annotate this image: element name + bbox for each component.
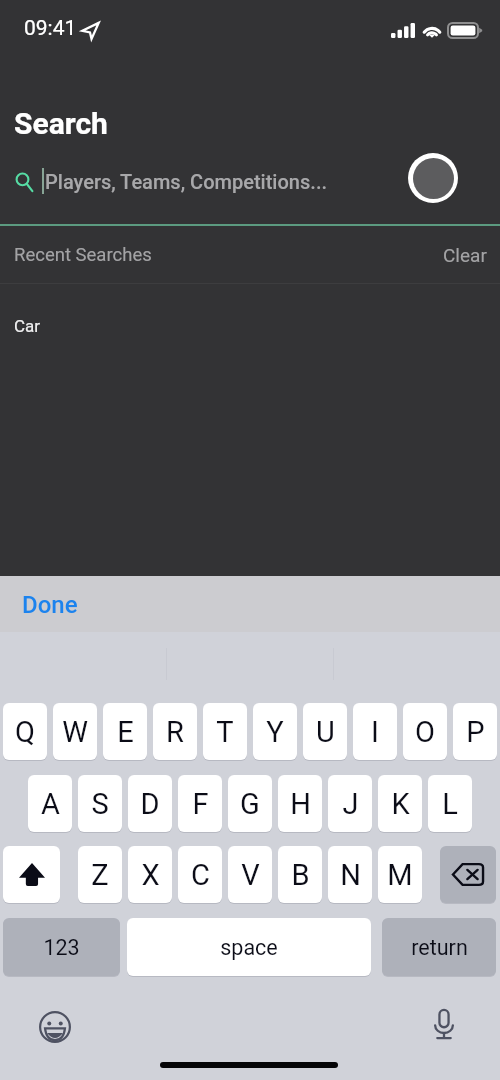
button[interactable]: G [228, 775, 272, 832]
button[interactable]: Profile [408, 153, 458, 203]
button[interactable]: Backspace [440, 846, 496, 903]
staticText: 09:41 [24, 16, 77, 41]
button[interactable]: Y [253, 703, 297, 760]
staticText: space [220, 935, 278, 960]
button[interactable]: H [278, 775, 322, 832]
staticText: G [240, 787, 260, 821]
staticText: V [241, 858, 260, 892]
staticText: Q [15, 715, 35, 749]
button[interactable]: D [128, 775, 172, 832]
button[interactable]: A [28, 775, 72, 832]
staticText: E [117, 715, 134, 749]
staticText: Search [14, 106, 108, 141]
staticText: F [192, 787, 209, 821]
staticText: O [415, 715, 435, 749]
staticText: 123 [43, 935, 80, 960]
button[interactable]: Z [78, 846, 122, 903]
staticText: H [290, 787, 311, 821]
button[interactable]: Q [3, 703, 47, 760]
staticText: X [141, 858, 160, 892]
button[interactable]: return [382, 918, 496, 976]
button[interactable]: W [53, 703, 97, 760]
staticText: R [166, 715, 184, 749]
staticText: A [41, 787, 60, 821]
button[interactable]: O [403, 703, 447, 760]
staticText: I [371, 715, 379, 749]
button[interactable]: 123 [3, 918, 120, 976]
button[interactable]: space [127, 918, 371, 976]
button[interactable]: Shift [3, 846, 60, 903]
button[interactable]: V [228, 846, 272, 903]
staticText: N [340, 858, 361, 892]
button[interactable]: Done [22, 591, 78, 619]
staticText: T [216, 715, 234, 749]
button[interactable]: X [128, 846, 172, 903]
staticText: B [291, 858, 310, 892]
staticText: K [391, 787, 410, 821]
staticText: M [387, 858, 413, 892]
staticText: P [466, 715, 485, 749]
button[interactable]: S [78, 775, 122, 832]
button[interactable]: U [303, 703, 347, 760]
staticText: J [342, 787, 359, 821]
button[interactable]: Car [0, 284, 500, 368]
staticText: D [140, 787, 160, 821]
button[interactable]: Emoji keyboard [36, 1008, 74, 1046]
button[interactable]: Clear [443, 244, 487, 266]
button[interactable]: I [353, 703, 397, 760]
staticText: Car [14, 316, 41, 336]
staticText: W [62, 715, 88, 749]
button[interactable]: Dictation [425, 1006, 463, 1044]
staticText: L [442, 787, 458, 821]
staticText: S [91, 787, 109, 821]
button[interactable]: B [278, 846, 322, 903]
button[interactable]: L [428, 775, 472, 832]
button[interactable]: N [328, 846, 372, 903]
staticText: Recent Searches [14, 244, 152, 266]
staticText: Clear [443, 244, 487, 266]
button[interactable]: J [328, 775, 372, 832]
button[interactable]: R [153, 703, 197, 760]
staticText: Players, Teams, Competitions... [45, 170, 328, 193]
staticText: U [316, 715, 335, 749]
button[interactable]: P [453, 703, 497, 760]
staticText: Y [266, 715, 284, 749]
button[interactable]: E [103, 703, 147, 760]
button[interactable]: T [203, 703, 247, 760]
button[interactable]: F [178, 775, 222, 832]
staticText: Done [22, 591, 78, 619]
staticText: Z [91, 858, 109, 892]
button[interactable]: C [178, 846, 222, 903]
button[interactable]: K [378, 775, 422, 832]
staticText: return [411, 935, 468, 960]
staticText: C [191, 858, 210, 892]
button[interactable]: M [378, 846, 422, 903]
